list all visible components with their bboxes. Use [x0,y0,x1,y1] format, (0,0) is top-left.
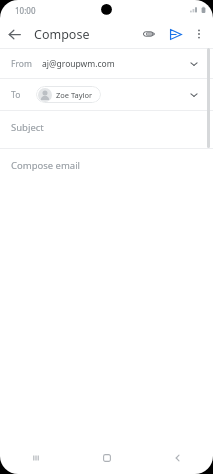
button[interactable]: Send [162,21,188,47]
button[interactable]: Back [142,442,213,474]
button[interactable]: Expand [186,56,202,72]
staticText: Compose email [11,159,81,172]
staticText: Zoe Taylor [56,90,93,100]
staticText: From [11,58,32,70]
staticText: Subject [11,121,44,134]
button[interactable]: Home [71,442,142,474]
button[interactable]: Back [0,20,28,48]
staticText: aj@groupwm.com [42,58,115,70]
button[interactable]: Compose email [0,149,213,189]
staticText: 10:00 [15,5,36,16]
button[interactable]: Zoe Taylor [36,86,101,103]
button[interactable]: Subject [0,111,213,148]
button[interactable]: Recent apps [0,442,71,474]
button[interactable]: More options [188,23,210,45]
staticText: To [11,89,21,101]
button[interactable]: To [0,79,213,110]
button[interactable]: Attach file [136,21,162,47]
staticText: Compose [34,26,90,43]
button[interactable]: From [0,49,213,78]
button[interactable]: Expand [186,87,202,103]
